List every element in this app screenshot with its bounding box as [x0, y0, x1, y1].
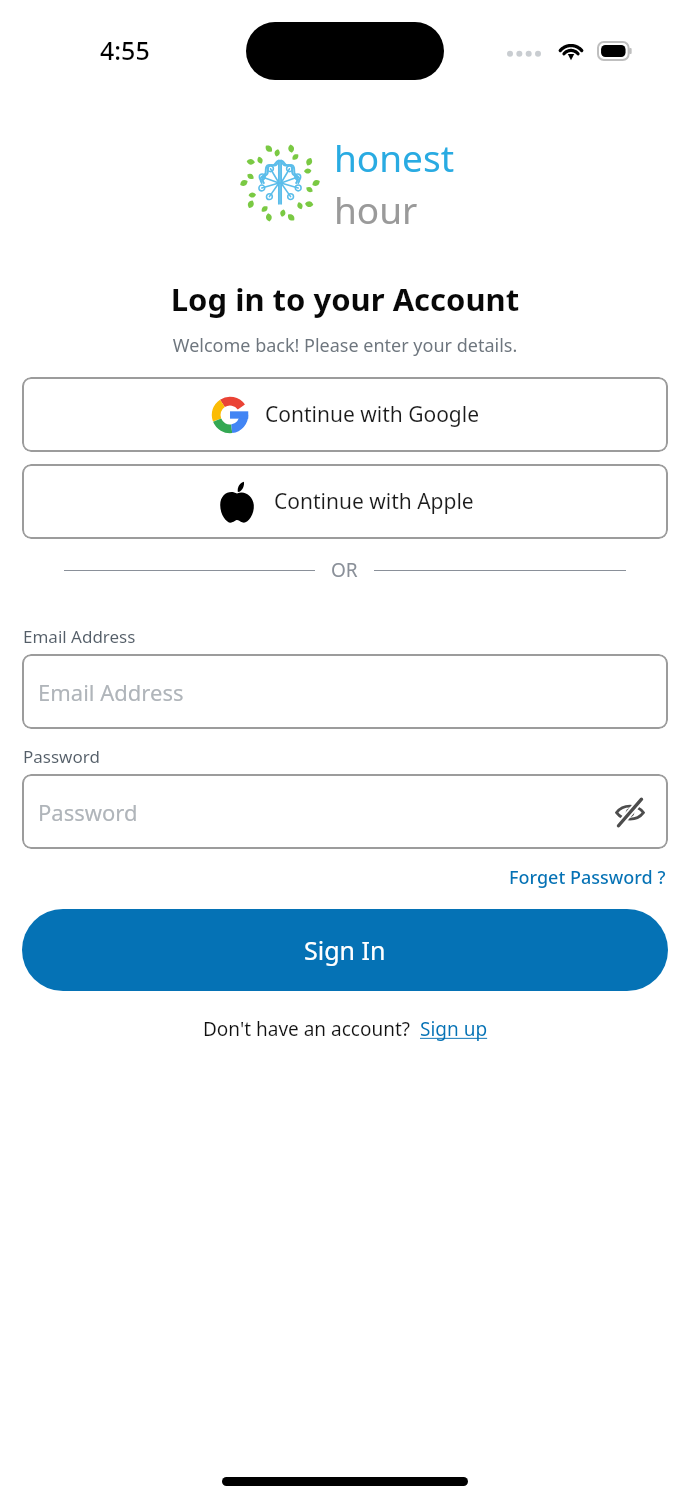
staticText: honest — [334, 132, 455, 182]
staticText: Sign up — [420, 1016, 488, 1042]
staticText: Continue with Google — [265, 400, 480, 429]
button[interactable]: Sign up — [420, 1016, 488, 1042]
staticText: Password — [38, 797, 138, 827]
staticText: Welcome back! Please enter your details. — [0, 333, 690, 358]
staticText: 4:55 — [100, 33, 150, 67]
button[interactable]: Toggle password visibility — [610, 792, 650, 832]
button[interactable]: Password — [22, 774, 668, 849]
staticText: Continue with Apple — [274, 487, 474, 516]
button[interactable]: Sign In — [22, 909, 668, 991]
staticText: Don't have an account? — [203, 1016, 411, 1042]
staticText: Email Address — [23, 625, 136, 648]
button[interactable]: Forget Password ? — [507, 862, 668, 893]
button[interactable]: Email Address — [22, 654, 668, 729]
staticText: OR — [331, 557, 358, 583]
staticText: Forget Password ? — [509, 865, 666, 890]
staticText: hour — [334, 184, 418, 234]
button[interactable]: Continue with Google — [22, 377, 668, 452]
button[interactable]: Continue with Apple — [22, 464, 668, 539]
staticText: Sign In — [304, 933, 386, 967]
staticText: Log in to your Account — [0, 278, 690, 320]
staticText: Password — [23, 745, 100, 768]
staticText: Email Address — [38, 677, 184, 707]
